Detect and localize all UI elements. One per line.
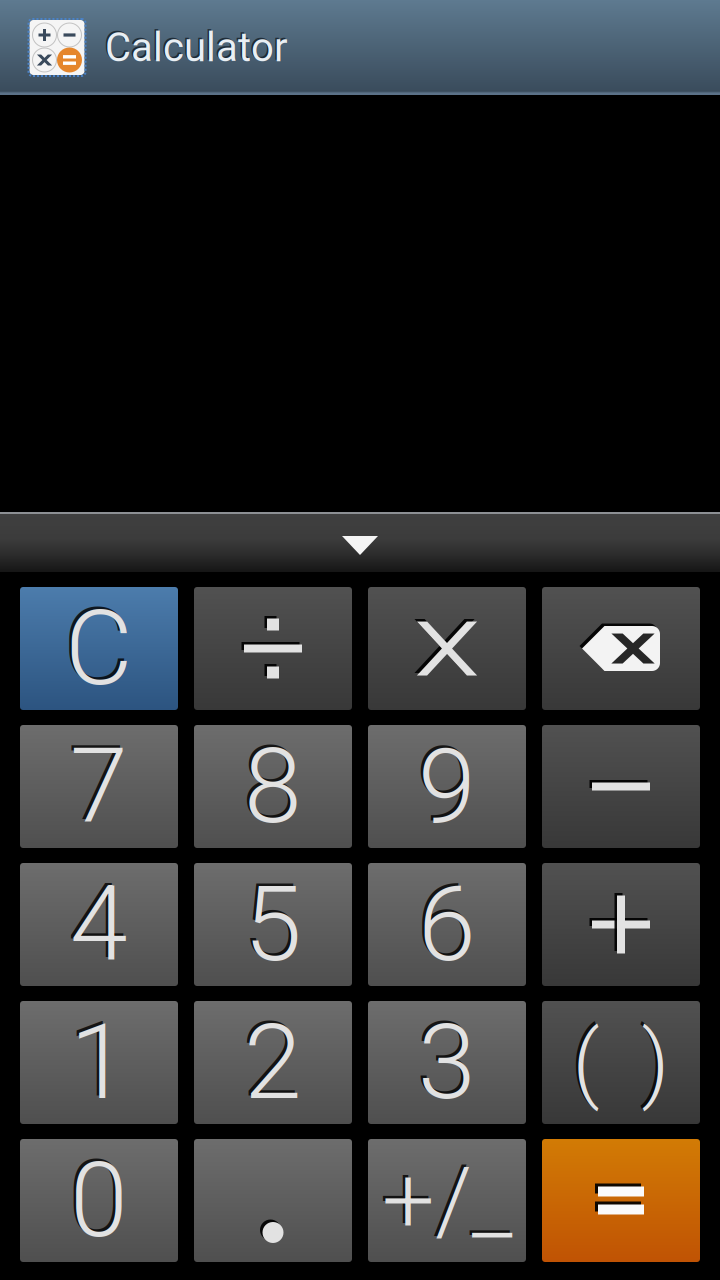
button[interactable]: 9 <box>368 725 526 848</box>
staticText: Calculator <box>103 23 286 69</box>
staticText: 9 <box>418 726 476 847</box>
staticText: 4 <box>67 861 125 983</box>
staticText: 3 <box>415 999 473 1121</box>
button[interactable]: 0 <box>20 1139 178 1262</box>
button[interactable]: 5 <box>194 863 352 986</box>
button[interactable]: 8 <box>194 725 352 848</box>
staticText: 6 <box>415 861 473 983</box>
button[interactable]: Minus <box>542 725 700 848</box>
button[interactable]: Plus <box>542 863 700 986</box>
staticText: 2 <box>241 999 299 1121</box>
staticText: 4 <box>70 864 128 985</box>
button[interactable]: Plus or minus <box>368 1139 526 1262</box>
button[interactable]: Multiply <box>368 587 526 710</box>
staticText: 7 <box>70 726 128 847</box>
button[interactable]: Delete <box>542 587 700 710</box>
staticText: Calculator <box>105 24 288 71</box>
button[interactable]: 3 <box>368 1001 526 1124</box>
staticText: 8 <box>241 723 299 845</box>
button[interactable]: Clear <box>20 587 178 710</box>
button[interactable]: Divide <box>194 587 352 710</box>
staticText: 1 <box>70 1002 128 1123</box>
staticText: C <box>65 588 133 709</box>
staticText: 5 <box>244 864 302 985</box>
button[interactable]: Hide keypad <box>0 512 720 572</box>
staticText: 1 <box>67 999 125 1121</box>
staticText: 3 <box>418 1002 476 1123</box>
staticText: 5 <box>241 861 299 983</box>
button[interactable]: 6 <box>368 863 526 986</box>
button[interactable]: Decimal point <box>194 1139 352 1262</box>
button[interactable]: 2 <box>194 1001 352 1124</box>
button[interactable]: 1 <box>20 1001 178 1124</box>
staticText: 6 <box>418 864 476 985</box>
staticText: 2 <box>244 1002 302 1123</box>
button[interactable]: 7 <box>20 725 178 848</box>
staticText: C <box>62 585 130 707</box>
button[interactable]: Parentheses <box>542 1001 700 1124</box>
staticText: 7 <box>67 723 125 845</box>
staticText: ( ) <box>570 1010 667 1110</box>
staticText: 0 <box>70 1140 128 1261</box>
staticText: 8 <box>244 726 302 847</box>
staticText: +/_ <box>382 1146 512 1255</box>
staticText: 0 <box>67 1137 125 1259</box>
staticText: ( ) <box>572 1012 669 1112</box>
staticText: +/_ <box>379 1143 509 1253</box>
button[interactable]: 4 <box>20 863 178 986</box>
button[interactable]: Equals <box>542 1139 700 1262</box>
staticText: 9 <box>415 723 473 845</box>
